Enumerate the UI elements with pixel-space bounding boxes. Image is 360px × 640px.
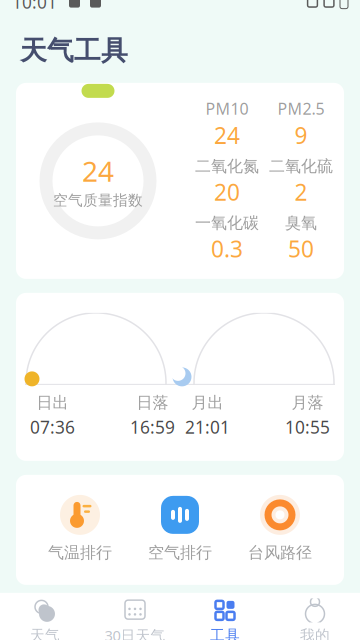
staticText: 20 [214,177,240,207]
staticText: 空气排行 [148,543,212,563]
button[interactable]: 30日天气 [90,595,180,640]
button[interactable]: 工具 [180,595,270,640]
button[interactable]: 我的 [270,595,360,640]
staticText: 台风路径 [248,543,312,563]
button[interactable]: 空气排行 [130,493,230,563]
staticText: 07:36 [30,415,75,438]
staticText: 月落 [291,393,323,413]
staticText: 天气 [30,626,60,640]
staticText: 月出 [191,393,223,413]
button[interactable]: 台风路径 [230,493,330,563]
staticText: 24 [214,120,240,150]
button[interactable]: 天气 [0,595,90,640]
staticText: 日出 [36,393,68,413]
staticText: 9 [294,120,307,150]
staticText: 2 [294,177,307,207]
staticText: 0.3 [211,234,243,264]
staticText: 日落 [136,393,168,413]
staticText: 10:55 [285,415,330,438]
staticText: 24 [82,152,114,189]
staticText: 气温排行 [48,543,112,563]
staticText: 二氧化硫 [269,156,333,176]
staticText: 臭氧 [285,213,317,233]
staticText: 二氧化氮 [195,156,259,176]
staticText: PM2.5 [277,98,324,119]
staticText: 30日天气 [104,626,165,640]
staticText: PM10 [205,98,248,119]
staticText: 天气工具 [20,34,128,67]
staticText: 50 [288,234,314,264]
button[interactable]: 气温排行 [30,493,130,563]
staticText: 16:59 [130,415,175,438]
staticText: 一氧化碳 [195,213,259,233]
staticText: 我的 [300,626,330,640]
staticText: 21:01 [185,415,230,438]
staticText: 工具 [210,626,240,640]
staticText: 10:01 [12,0,57,14]
staticText: 空气质量指数 [53,191,143,209]
